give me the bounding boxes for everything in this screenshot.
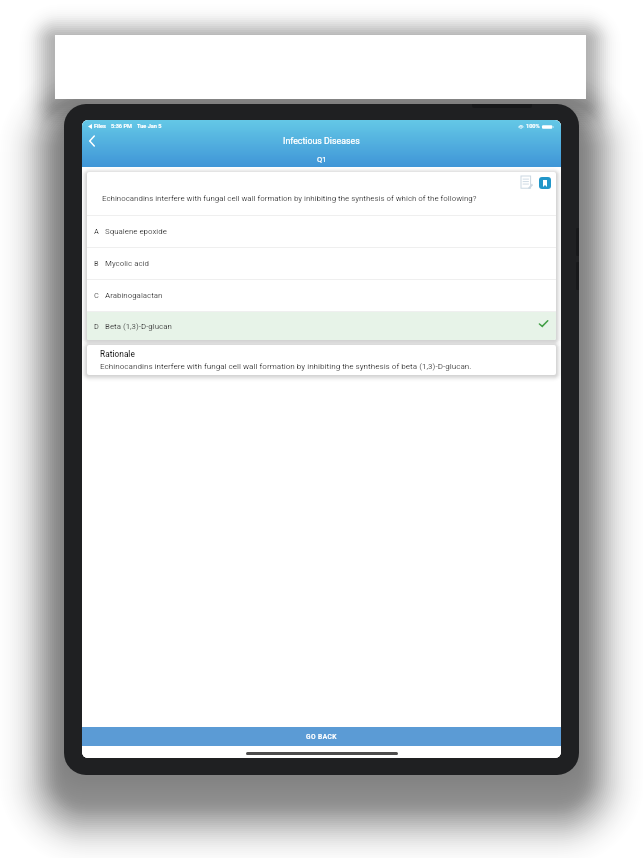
button[interactable]: C <box>87 280 556 311</box>
staticText: Rationale <box>100 349 135 359</box>
staticText: Beta (1,3)-D-glucan <box>105 322 172 331</box>
staticText: Mycolic acid <box>105 259 149 268</box>
staticText: C <box>94 291 99 300</box>
staticText: 100% <box>526 123 540 130</box>
staticText: 5:36 PM <box>111 123 132 130</box>
staticText: B <box>94 259 99 268</box>
button[interactable]: A <box>87 216 556 247</box>
staticText: A <box>94 227 99 236</box>
staticText: Arabinogalactan <box>105 291 163 300</box>
staticText: D <box>94 322 99 331</box>
staticText: GO BACK <box>306 733 337 741</box>
button[interactable]: B <box>87 248 556 279</box>
button[interactable]: Bookmark <box>539 177 551 189</box>
staticText: Tue Jan 5 <box>137 123 162 130</box>
staticText: Infectious Diseases <box>283 136 360 146</box>
staticText: Echinocandins interfere with fungal cell… <box>102 194 477 203</box>
button[interactable]: GO BACK <box>82 727 561 746</box>
button[interactable]: Add note <box>521 176 533 189</box>
staticText: Files <box>94 123 106 130</box>
staticText: Echinocandins interfere with fungal cell… <box>100 361 472 370</box>
staticText: Q1 <box>317 155 327 164</box>
button[interactable]: D <box>87 312 556 340</box>
staticText: Squalene epoxide <box>105 227 167 236</box>
button[interactable]: Back <box>84 133 100 149</box>
